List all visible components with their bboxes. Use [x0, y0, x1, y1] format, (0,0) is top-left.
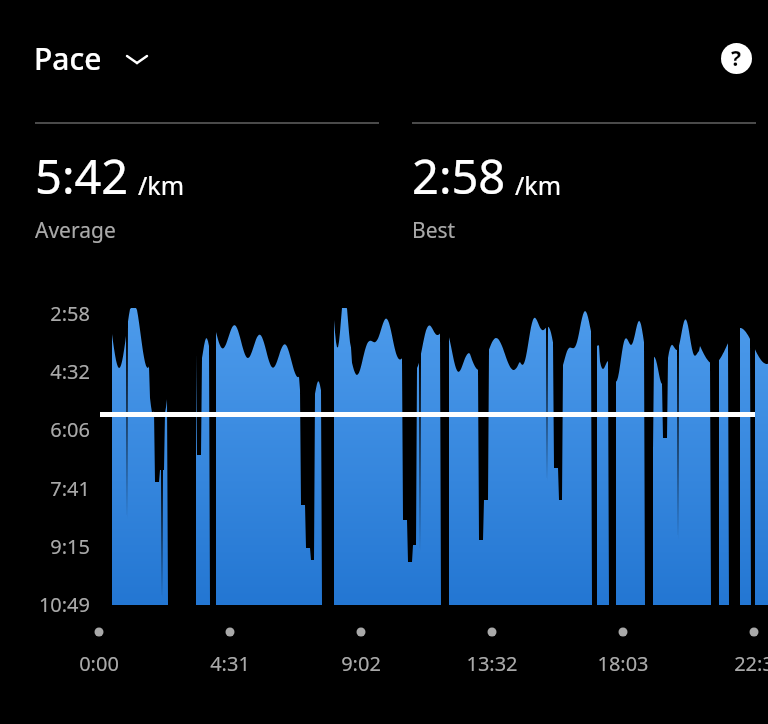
staticText: Average [35, 216, 116, 245]
button[interactable]: Pace [28, 34, 158, 83]
staticText: ? [731, 44, 742, 73]
staticText: 22:3 [694, 650, 768, 677]
staticText: 0:00 [39, 650, 159, 677]
staticText: 7:41 [0, 475, 90, 502]
staticText: /km [515, 168, 562, 202]
button[interactable]: Help [706, 28, 766, 88]
staticText: Best [412, 216, 456, 245]
staticText: 9:02 [301, 650, 421, 677]
staticText: /km [138, 168, 185, 202]
staticText: 5:42 [35, 144, 129, 208]
staticText: 4:31 [170, 650, 290, 677]
staticText: 18:03 [563, 650, 683, 677]
staticText: 6:06 [0, 416, 90, 443]
staticText: 2:58 [0, 300, 90, 327]
staticText: Pace [34, 38, 102, 79]
staticText: 2:58 [412, 144, 506, 208]
staticText: 13:32 [432, 650, 552, 677]
staticText: 10:49 [0, 591, 90, 618]
staticText: 4:32 [0, 358, 90, 385]
staticText: 9:15 [0, 533, 90, 560]
button[interactable]: 5:42 [35, 122, 379, 245]
button[interactable]: 2:58 [412, 122, 756, 245]
